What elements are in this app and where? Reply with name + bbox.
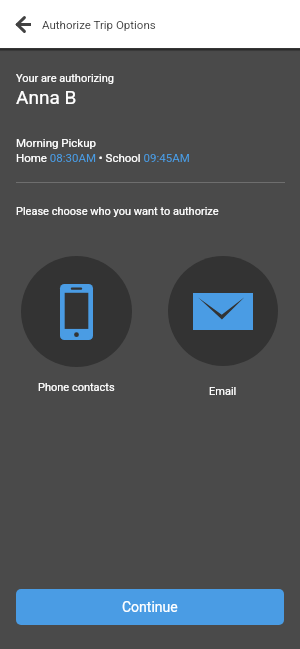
staticText: Home 08:30AM • School 09:45AM — [16, 151, 190, 164]
staticText: Morning Pickup — [16, 136, 97, 149]
staticText: Anna B — [16, 86, 77, 108]
staticText: Phone contacts — [38, 381, 115, 394]
button[interactable]: Continue — [16, 589, 284, 625]
staticText: Your are authorizing — [16, 72, 114, 85]
button[interactable]: Phone contacts — [21, 256, 132, 394]
staticText: Continue — [122, 599, 178, 615]
button[interactable]: Back — [0, 0, 42, 48]
staticText: Email — [209, 385, 237, 398]
staticText: Authorize Trip Options — [42, 18, 156, 31]
button[interactable]: Email — [168, 256, 278, 398]
staticText: Please choose who you want to authorize — [16, 205, 219, 218]
